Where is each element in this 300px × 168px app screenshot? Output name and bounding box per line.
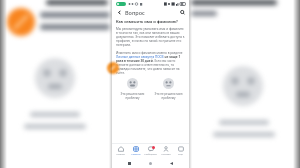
staticText: Вопрос (125, 9, 145, 16)
button[interactable]: Back (168, 160, 175, 167)
staticText: Главная (116, 153, 125, 156)
button[interactable]: Support chat (107, 62, 119, 74)
button[interactable]: Это решило мою проблему (116, 76, 149, 102)
staticText: Это не решило мою проблему (152, 92, 185, 100)
staticText: Это решило мою проблему (116, 92, 149, 100)
button[interactable]: Главная (113, 146, 128, 156)
button[interactable]: Это не решило мою проблему (152, 76, 185, 102)
button[interactable]: Back (115, 8, 123, 16)
button[interactable]: Платежи (158, 146, 173, 156)
button[interactable]: Сообщения (143, 146, 158, 156)
staticText: Изменить имя и фамилию можно в разделе Л… (116, 51, 185, 75)
staticText: Как изменить имя и фамилию? (116, 19, 178, 24)
staticText: Платежи (161, 153, 171, 156)
button[interactable]: Home (147, 160, 154, 167)
button[interactable]: Search (178, 8, 186, 16)
staticText: Ещё (178, 153, 183, 156)
staticText: Сервисы (131, 153, 141, 156)
button[interactable]: Ещё (173, 146, 188, 156)
button[interactable]: Recent apps (126, 160, 133, 167)
button[interactable]: Сервисы (128, 146, 143, 156)
staticText: Сообщения (144, 153, 157, 156)
staticText: Мы рекомендуем указывать имя и фамилию в… (116, 27, 185, 47)
